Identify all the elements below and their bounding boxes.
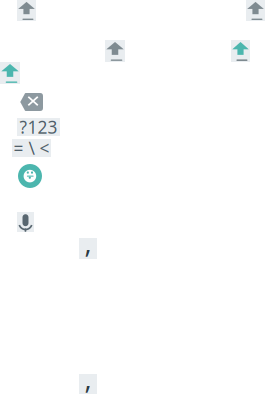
staticText: ,: [84, 225, 91, 260]
button[interactable]: Shift: [246, 0, 265, 21]
button[interactable]: Shift: [105, 40, 125, 62]
button[interactable]: ,: [79, 374, 97, 394]
button[interactable]: Shift: [231, 40, 250, 62]
button[interactable]: ?123: [17, 118, 60, 136]
staticText: = \ <: [13, 136, 49, 159]
button[interactable]: ,: [79, 238, 97, 259]
button[interactable]: Shift: [17, 0, 36, 21]
button[interactable]: = \ <: [12, 139, 51, 157]
button[interactable]: Dictate: [17, 212, 34, 232]
staticText: ,: [84, 361, 91, 394]
button[interactable]: Emoji: [18, 164, 42, 188]
button[interactable]: Delete: [20, 93, 43, 111]
button[interactable]: Shift: [0, 62, 20, 84]
staticText: ?123: [19, 115, 57, 138]
